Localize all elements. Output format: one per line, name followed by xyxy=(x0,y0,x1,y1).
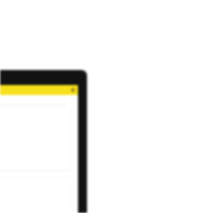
button[interactable]: App bar xyxy=(0,70,87,213)
button[interactable]: More options xyxy=(71,88,75,92)
button[interactable]: Selected tab xyxy=(0,85,78,95)
